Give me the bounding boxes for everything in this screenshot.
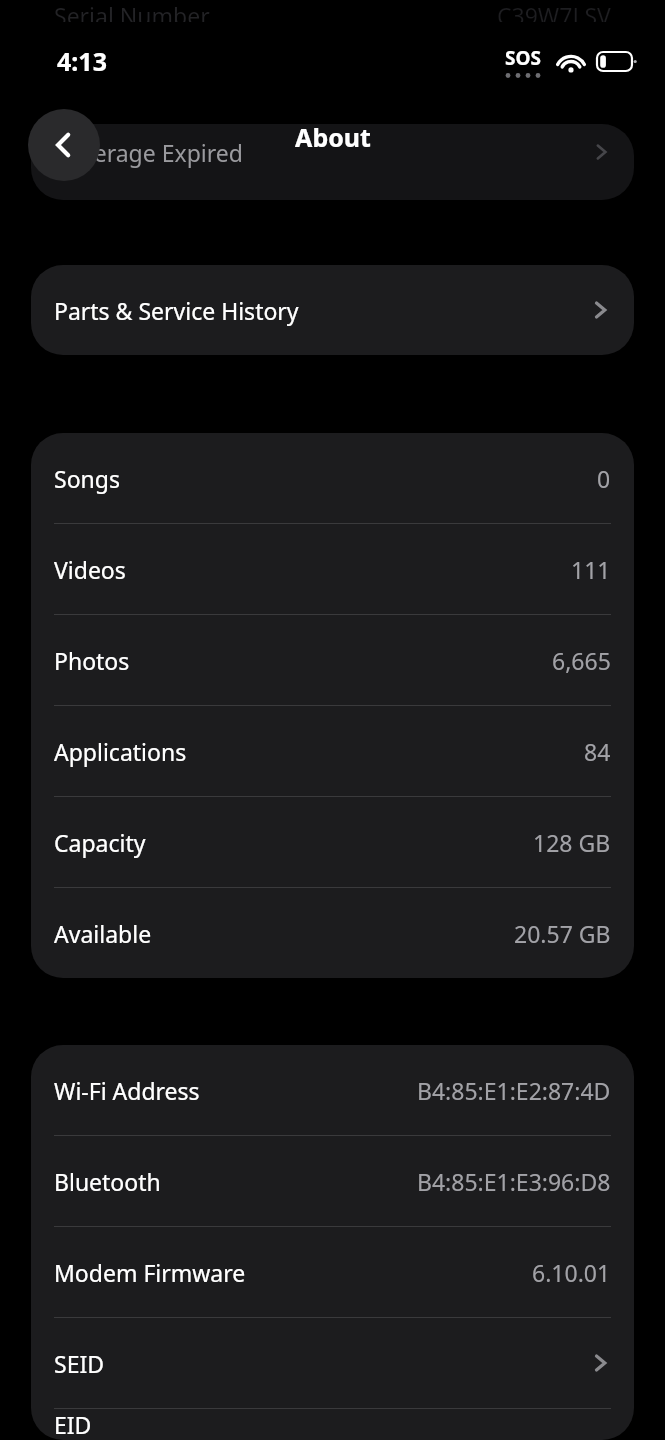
staticText: SEID — [54, 1348, 105, 1379]
staticText: Songs — [54, 463, 120, 494]
button[interactable]: EID — [31, 1409, 634, 1440]
staticText: C39W7LSV — [497, 0, 611, 22]
staticText: 128 GB — [533, 827, 611, 858]
staticText: B4:85:E1:E2:87:4D — [417, 1075, 611, 1106]
staticText: Bluetooth — [54, 1166, 161, 1197]
button[interactable]: Back — [28, 109, 100, 181]
staticText: Modem Firmware — [54, 1257, 246, 1288]
staticText: B4:85:E1:E3:96:D8 — [417, 1166, 611, 1197]
button[interactable]: Modem Firmware — [31, 1227, 634, 1317]
button[interactable]: Capacity — [31, 797, 634, 887]
staticText: Applications — [54, 736, 187, 767]
button[interactable]: Available — [31, 888, 634, 978]
staticText: Parts & Service History — [54, 295, 299, 326]
button[interactable]: Songs — [31, 433, 634, 523]
button[interactable]: Wi-Fi Address — [31, 1045, 634, 1135]
staticText: 111 — [571, 554, 611, 585]
staticText: Available — [54, 918, 152, 949]
staticText: About — [295, 120, 371, 154]
staticText: 0 — [597, 463, 611, 494]
staticText: 20.57 GB — [514, 918, 611, 949]
button[interactable]: Coverage Expired — [31, 124, 634, 200]
staticText: Videos — [54, 554, 126, 585]
staticText: EID — [54, 1409, 92, 1440]
staticText: Capacity — [54, 827, 146, 858]
staticText: 84 — [584, 736, 611, 767]
button[interactable]: SEID — [31, 1318, 634, 1408]
staticText: Serial Number — [54, 0, 210, 22]
button[interactable]: Photos — [31, 615, 634, 705]
staticText: Coverage Expired — [54, 137, 243, 168]
staticText: SOS — [505, 45, 541, 71]
button[interactable]: Bluetooth — [31, 1136, 634, 1226]
staticText: 6,665 — [552, 645, 611, 676]
staticText: Photos — [54, 645, 130, 676]
staticText: 4:13 — [57, 44, 107, 78]
button[interactable]: Parts & Service History — [31, 265, 634, 355]
button[interactable]: Applications — [31, 706, 634, 796]
button[interactable]: Videos — [31, 524, 634, 614]
staticText: Wi-Fi Address — [54, 1075, 200, 1106]
staticText: 6.10.01 — [532, 1257, 611, 1288]
